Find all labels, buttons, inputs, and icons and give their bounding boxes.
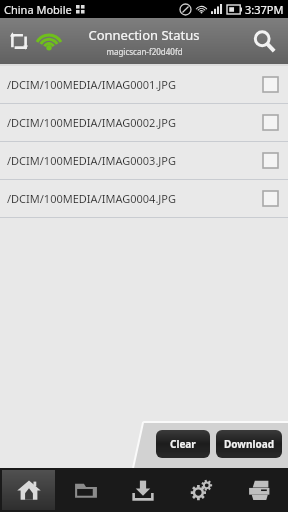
button[interactable]: Wi-Fi connected bbox=[34, 26, 64, 56]
staticText: Clear bbox=[170, 437, 196, 451]
staticText: Connection Status bbox=[88, 26, 200, 44]
staticText: /DCIM/100MEDIA/IMAG0003.JPG bbox=[7, 153, 177, 168]
button[interactable]: Print bbox=[232, 470, 286, 510]
button[interactable]: /DCIM/100MEDIA/IMAG0002.JPG bbox=[0, 104, 288, 141]
button[interactable]: Clear bbox=[156, 430, 210, 458]
staticText: /DCIM/100MEDIA/IMAG0004.JPG bbox=[7, 191, 177, 206]
button[interactable]: Download bbox=[216, 430, 282, 458]
button[interactable]: Home bbox=[2, 470, 55, 510]
staticText: magicscan-f20d40fd bbox=[106, 46, 183, 57]
button[interactable]: Search bbox=[248, 25, 280, 57]
button[interactable]: Settings bbox=[174, 470, 228, 510]
button[interactable]: /DCIM/100MEDIA/IMAG0004.JPG bbox=[0, 180, 288, 217]
button[interactable]: Select /DCIM/100MEDIA/IMAG0001.JPG bbox=[263, 77, 278, 92]
staticText: /DCIM/100MEDIA/IMAG0002.JPG bbox=[7, 115, 177, 130]
staticText: China Mobile bbox=[4, 2, 72, 17]
button[interactable]: Select /DCIM/100MEDIA/IMAG0003.JPG bbox=[263, 153, 278, 168]
button[interactable]: Folder bbox=[59, 470, 112, 510]
button[interactable]: /DCIM/100MEDIA/IMAG0001.JPG bbox=[0, 66, 288, 103]
button[interactable]: Select /DCIM/100MEDIA/IMAG0002.JPG bbox=[263, 115, 278, 130]
button[interactable]: Download bbox=[116, 470, 170, 510]
staticText: /DCIM/100MEDIA/IMAG0001.JPG bbox=[7, 77, 177, 92]
staticText: Download bbox=[224, 437, 274, 451]
button[interactable]: /DCIM/100MEDIA/IMAG0003.JPG bbox=[0, 142, 288, 179]
staticText: 3:37PM bbox=[245, 2, 284, 17]
button[interactable]: Refresh bbox=[6, 28, 32, 54]
button[interactable]: Select /DCIM/100MEDIA/IMAG0004.JPG bbox=[263, 191, 278, 206]
